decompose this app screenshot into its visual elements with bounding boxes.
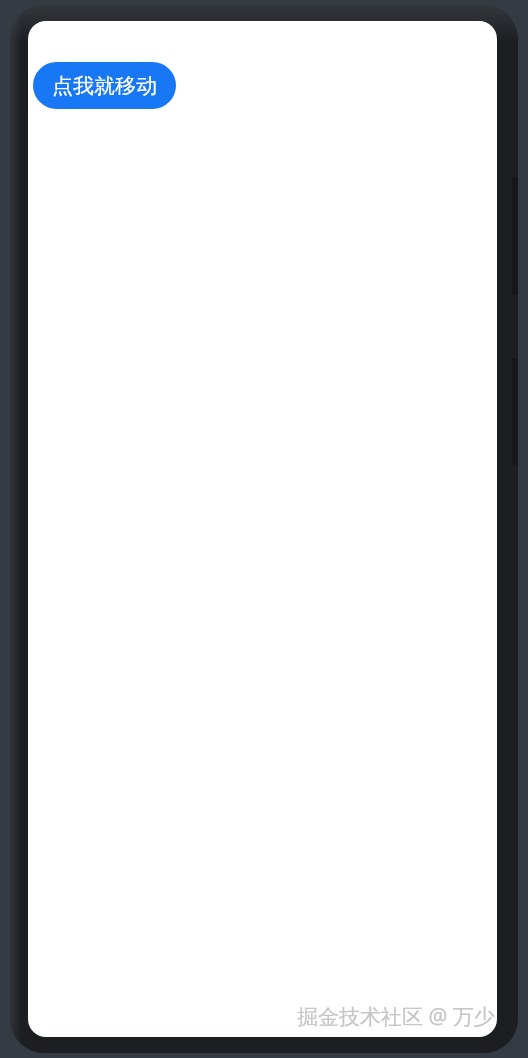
staticText: 点我就移动 <box>52 73 157 99</box>
button[interactable]: 点我就移动 <box>33 62 176 109</box>
staticText: 掘金技术社区 @ 万少 <box>297 1002 495 1031</box>
